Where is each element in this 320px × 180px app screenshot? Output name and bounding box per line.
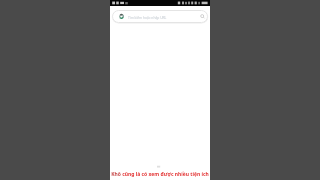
staticText: Tìm kiếm hoặc nhập URL — [128, 15, 167, 19]
staticText: Khô cũng là có xem được nhiều tiện ích — [111, 171, 209, 178]
other: Search — [200, 14, 205, 19]
button[interactable]: Tìm kiếm hoặc nhập URL — [112, 10, 208, 23]
